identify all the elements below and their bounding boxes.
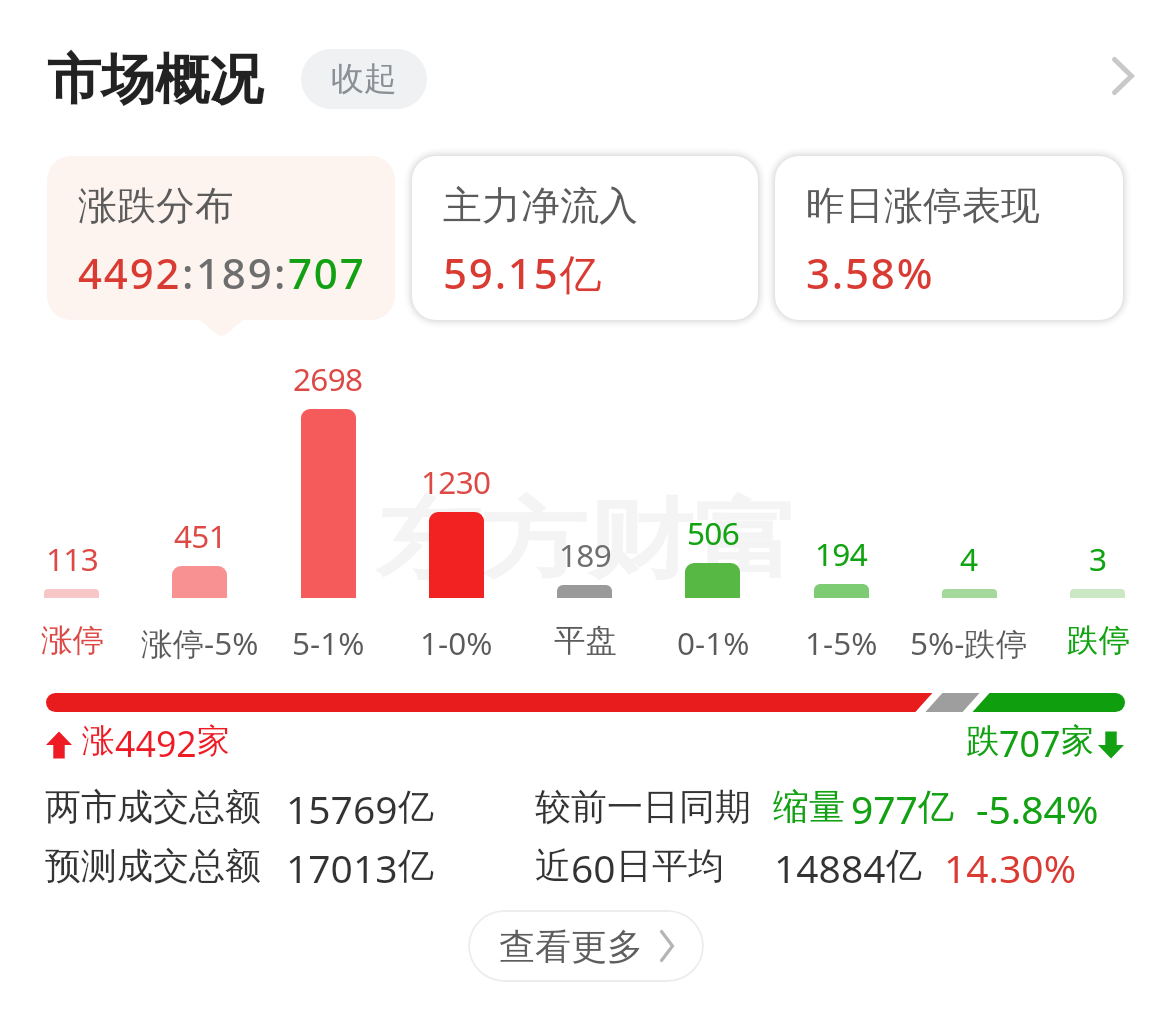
staticText: 4492	[78, 244, 182, 301]
staticText: 15769	[286, 782, 398, 835]
staticText: 4492	[115, 719, 197, 768]
button[interactable]: 查看更多	[468, 910, 704, 982]
staticText: 189	[559, 533, 611, 576]
staticText: 0-1%	[677, 621, 750, 664]
staticText: -5.84%	[976, 782, 1099, 835]
staticText: 4	[960, 537, 978, 580]
staticText: 涨	[82, 720, 115, 762]
staticText: 平盘	[554, 621, 617, 661]
staticText: 707	[999, 719, 1061, 768]
button[interactable]: 59.15亿	[412, 156, 758, 320]
staticText: 跌	[966, 720, 999, 762]
staticText: 亿	[398, 784, 434, 829]
staticText: :	[182, 244, 196, 301]
staticText: 3.58%	[806, 244, 935, 301]
staticText: :	[274, 244, 288, 301]
staticText: 451	[174, 514, 226, 557]
staticText: 亿	[398, 843, 434, 888]
staticText: 194	[815, 532, 867, 575]
staticText: 14.30%	[944, 841, 1077, 894]
staticText: 1230	[421, 460, 491, 503]
staticText: 收起	[331, 58, 397, 100]
staticText: 506	[687, 511, 739, 554]
button[interactable]: 收起	[301, 49, 427, 109]
button[interactable]: 4492	[47, 156, 395, 320]
staticText: 涨跌分布	[78, 181, 234, 230]
staticText: 707	[288, 244, 366, 301]
staticText: 亿	[886, 843, 922, 888]
staticText: 5-1%	[292, 621, 365, 664]
staticText: 60	[571, 841, 616, 894]
staticText: 977	[851, 782, 918, 835]
button[interactable]: 3.58%	[775, 156, 1123, 320]
staticText: 预测成交总额	[45, 843, 261, 888]
staticText: 17013	[286, 841, 398, 894]
staticText: 14884	[774, 841, 886, 894]
staticText: 2698	[293, 357, 363, 400]
staticText: 东方财富	[375, 486, 800, 594]
staticText: 市场概况	[47, 46, 263, 114]
staticText: 3	[1089, 537, 1107, 580]
staticText: 较前一日同期	[535, 784, 751, 829]
staticText: 1-0%	[420, 621, 493, 664]
staticText: 涨停	[41, 621, 104, 661]
staticText: 跌停	[1067, 621, 1130, 661]
staticText: 59.15亿	[443, 244, 604, 301]
button[interactable]: 展开	[1088, 41, 1158, 111]
staticText: 涨停-5%	[141, 621, 259, 664]
staticText: 缩量	[773, 784, 845, 829]
staticText: 两市成交总额	[45, 784, 261, 829]
staticText: 家	[1061, 720, 1094, 762]
staticText: 昨日涨停表现	[806, 181, 1040, 230]
staticText: 主力净流入	[443, 181, 638, 230]
staticText: 近	[535, 843, 571, 888]
staticText: 1-5%	[805, 621, 878, 664]
staticText: 查看更多	[499, 924, 643, 969]
staticText: 113	[46, 537, 98, 580]
staticText: 家	[197, 720, 230, 762]
staticText: 日平均	[616, 843, 724, 888]
staticText: 189	[196, 244, 274, 301]
staticText: 5%-跌停	[910, 621, 1028, 664]
staticText: 亿	[918, 784, 954, 829]
